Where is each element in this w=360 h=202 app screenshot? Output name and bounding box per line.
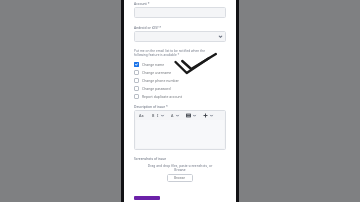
button[interactable] [134, 7, 226, 18]
staticText: I [157, 113, 159, 118]
button[interactable]: Report duplicate account [134, 92, 226, 100]
other: More options [176, 112, 179, 119]
button[interactable]: A [171, 112, 174, 119]
staticText: Change name [142, 62, 165, 67]
staticText: Screenshots of issue [134, 156, 167, 160]
staticText: Account * [134, 1, 150, 5]
staticText: Browse [174, 176, 186, 180]
button[interactable]: B [152, 112, 155, 119]
staticText: following feature is available * [134, 53, 180, 57]
button[interactable]: Aa [134, 110, 226, 150]
other: More options [193, 112, 196, 119]
staticText: Android or iOS? * [134, 25, 162, 29]
staticText: Aa [139, 113, 144, 118]
button[interactable]: List [186, 113, 191, 118]
other: More options [210, 112, 213, 119]
staticText: Description of issue * [134, 104, 168, 108]
other: More options [161, 112, 164, 119]
staticText: Report duplicate account [142, 94, 182, 99]
button[interactable]: Insert [203, 113, 208, 118]
staticText: Drag and drop files, paste screenshots, … [134, 163, 226, 167]
staticText: B [152, 113, 155, 118]
button[interactable]: Change phone number [134, 76, 226, 84]
staticText: Change password [142, 86, 171, 91]
button[interactable] [134, 196, 160, 200]
button[interactable]: Drag and drop files, paste screenshots, … [134, 163, 226, 182]
button[interactable]: Change password [134, 84, 226, 92]
staticText: Browse [134, 167, 226, 171]
staticText: Put me on the email list to be notified … [134, 49, 206, 53]
button[interactable]: I [157, 112, 159, 119]
button[interactable]: Aa [139, 112, 144, 119]
staticText: A [171, 113, 174, 118]
button[interactable]: Change name [134, 60, 226, 68]
button[interactable]: Browse [167, 174, 193, 182]
staticText: Change username [142, 70, 172, 75]
staticText: Change phone number [142, 78, 179, 83]
button[interactable]: Select platform [134, 31, 226, 42]
button[interactable]: Change username [134, 68, 226, 76]
